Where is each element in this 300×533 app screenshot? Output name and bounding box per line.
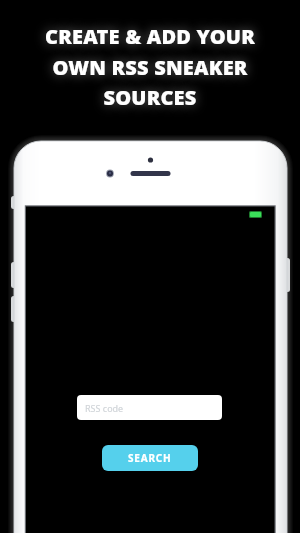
staticText: RSS code [85, 402, 124, 414]
button[interactable]: RSS code [77, 395, 222, 420]
staticText: CREATE & ADD YOUR OWN RSS SNEAKER SOURCE… [9, 23, 291, 110]
staticText: SEARCH [128, 451, 172, 465]
button[interactable]: SEARCH [102, 445, 198, 471]
other: Battery status [249, 206, 265, 220]
